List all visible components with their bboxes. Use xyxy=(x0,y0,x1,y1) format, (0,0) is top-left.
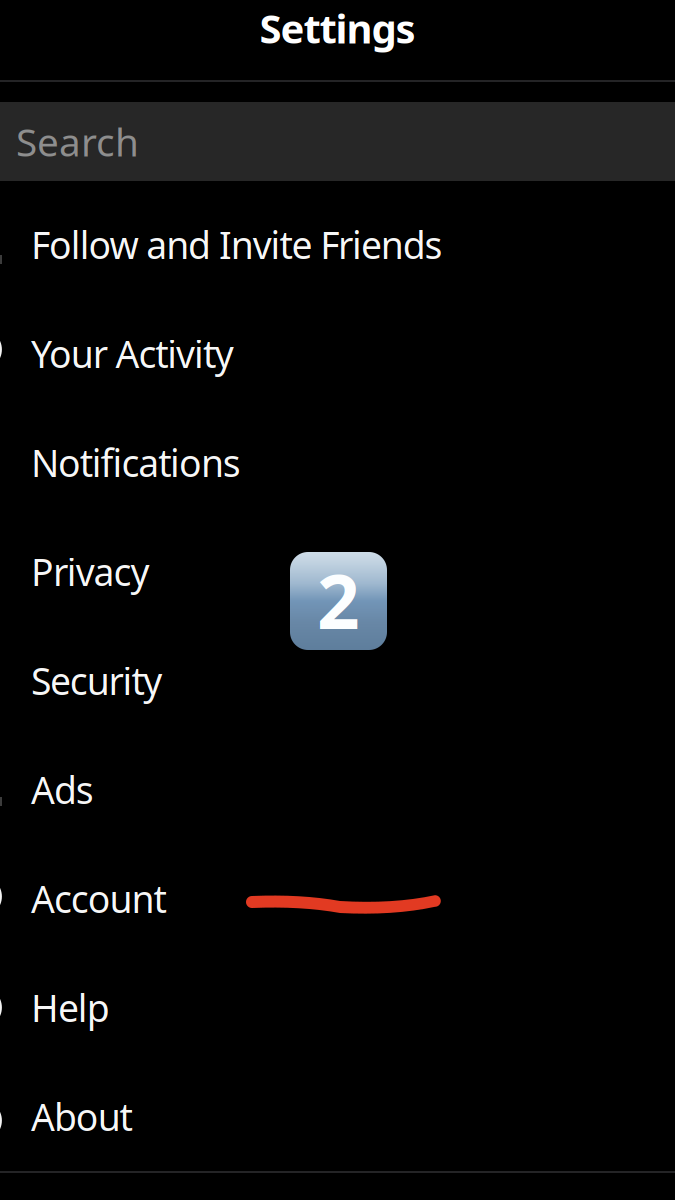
button[interactable]: Your Activity xyxy=(0,299,675,408)
staticText: Your Activity xyxy=(31,329,234,378)
staticText: About xyxy=(31,1092,133,1141)
staticText: Follow and Invite Friends xyxy=(31,220,443,269)
staticText: Ads xyxy=(31,765,94,814)
button[interactable]: Privacy xyxy=(0,517,675,626)
button[interactable]: Account xyxy=(0,844,675,953)
button[interactable]: Search xyxy=(0,102,675,181)
staticText: Search xyxy=(16,116,139,167)
staticText: 2 xyxy=(317,550,360,650)
button[interactable]: Security xyxy=(0,626,675,735)
button[interactable]: Follow and Invite Friends xyxy=(0,190,675,299)
button[interactable]: Ads xyxy=(0,735,675,844)
staticText: Notifications xyxy=(31,438,241,487)
staticText: Help xyxy=(31,983,110,1032)
button[interactable]: Notifications xyxy=(0,408,675,517)
staticText: Settings xyxy=(259,1,415,54)
staticText: Security xyxy=(31,656,162,705)
button[interactable]: Help xyxy=(0,953,675,1062)
staticText: Privacy xyxy=(31,547,149,596)
staticText: Account xyxy=(31,874,166,923)
button[interactable]: About xyxy=(0,1062,675,1171)
